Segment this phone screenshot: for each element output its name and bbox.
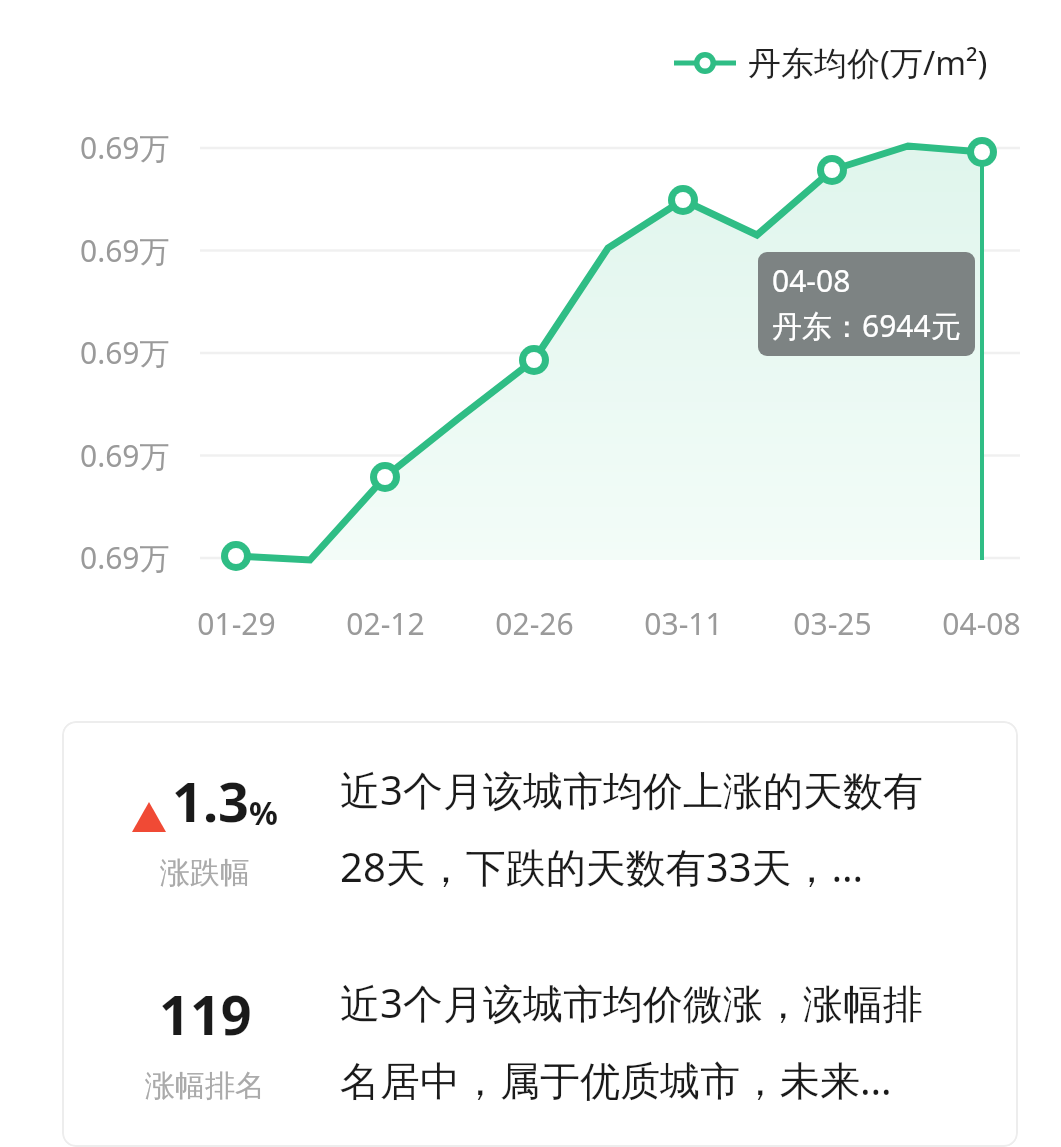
staticText: 01-29 <box>197 603 276 644</box>
staticText: 119 <box>159 977 252 1051</box>
button[interactable]: 119 <box>62 934 1018 1147</box>
staticText: 名居中，属于优质城市，未来… <box>340 1052 892 1107</box>
button[interactable]: 上涨 <box>62 721 1018 934</box>
staticText: 近3个月该城市均价微涨，涨幅排 <box>340 975 923 1030</box>
staticText: 近3个月该城市均价上涨的天数有 <box>340 762 923 817</box>
staticText: % <box>249 791 278 835</box>
staticText: 0.69万 <box>80 230 170 271</box>
staticText: 02-26 <box>495 603 574 644</box>
staticText: 涨幅排名 <box>145 1067 265 1105</box>
staticText: 04-08 <box>942 603 1021 644</box>
staticText: 03-25 <box>793 603 872 644</box>
staticText: 1.3 <box>172 764 249 838</box>
staticText: 0.69万 <box>80 332 170 373</box>
staticText: 02-12 <box>346 603 425 644</box>
other: 上涨 <box>132 802 166 832</box>
staticText: 0.69万 <box>80 127 170 168</box>
staticText: 涨跌幅 <box>160 854 250 892</box>
button[interactable]: 丹东均价(万/m²) <box>672 36 990 89</box>
staticText: 丹东：6944元 <box>772 305 961 346</box>
staticText: 丹东均价(万/m²) <box>748 40 988 85</box>
staticText: 03-11 <box>644 603 723 644</box>
staticText: 04-08 <box>772 260 851 301</box>
staticText: 0.69万 <box>80 537 170 578</box>
staticText: 0.69万 <box>80 435 170 476</box>
staticText: 28天，下跌的天数有33天，… <box>340 839 864 894</box>
